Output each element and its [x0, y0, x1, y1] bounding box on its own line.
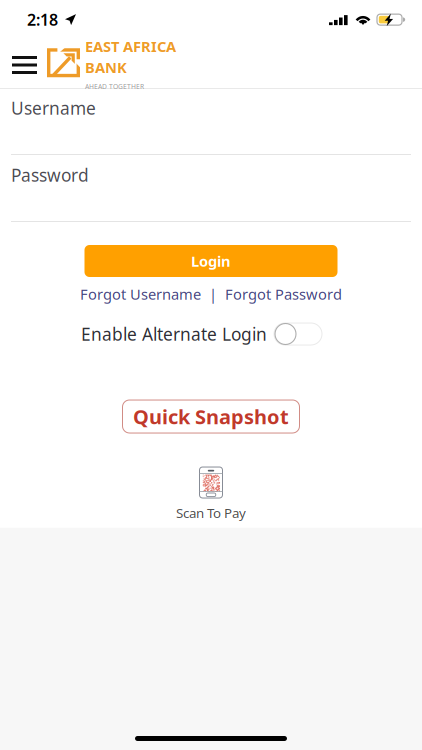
staticText: Forgot Username: [80, 284, 201, 304]
button[interactable]: Login: [84, 245, 337, 277]
button[interactable]: Quick Snapshot: [122, 400, 299, 433]
button[interactable]: Scan To Pay: [176, 467, 246, 522]
staticText: Login: [191, 251, 231, 271]
staticText: |: [201, 284, 225, 304]
staticText: Scan To Pay: [176, 504, 246, 522]
button[interactable]: Menu: [12, 44, 37, 84]
staticText: EAST AFRICA: [85, 37, 176, 56]
staticText: Quick Snapshot: [133, 403, 289, 430]
button[interactable]: Enable Alternate Login: [274, 323, 322, 345]
staticText: Password: [11, 163, 89, 186]
staticText: BANK: [85, 58, 127, 77]
button[interactable]: Forgot Username: [80, 284, 201, 304]
staticText: AHEAD TOGETHER: [85, 82, 144, 91]
staticText: Enable Alternate Login: [81, 322, 267, 345]
staticText: 2:18: [27, 9, 58, 30]
staticText: Forgot Password: [225, 284, 342, 304]
button[interactable]: Forgot Password: [225, 284, 342, 304]
staticText: Username: [11, 96, 96, 119]
